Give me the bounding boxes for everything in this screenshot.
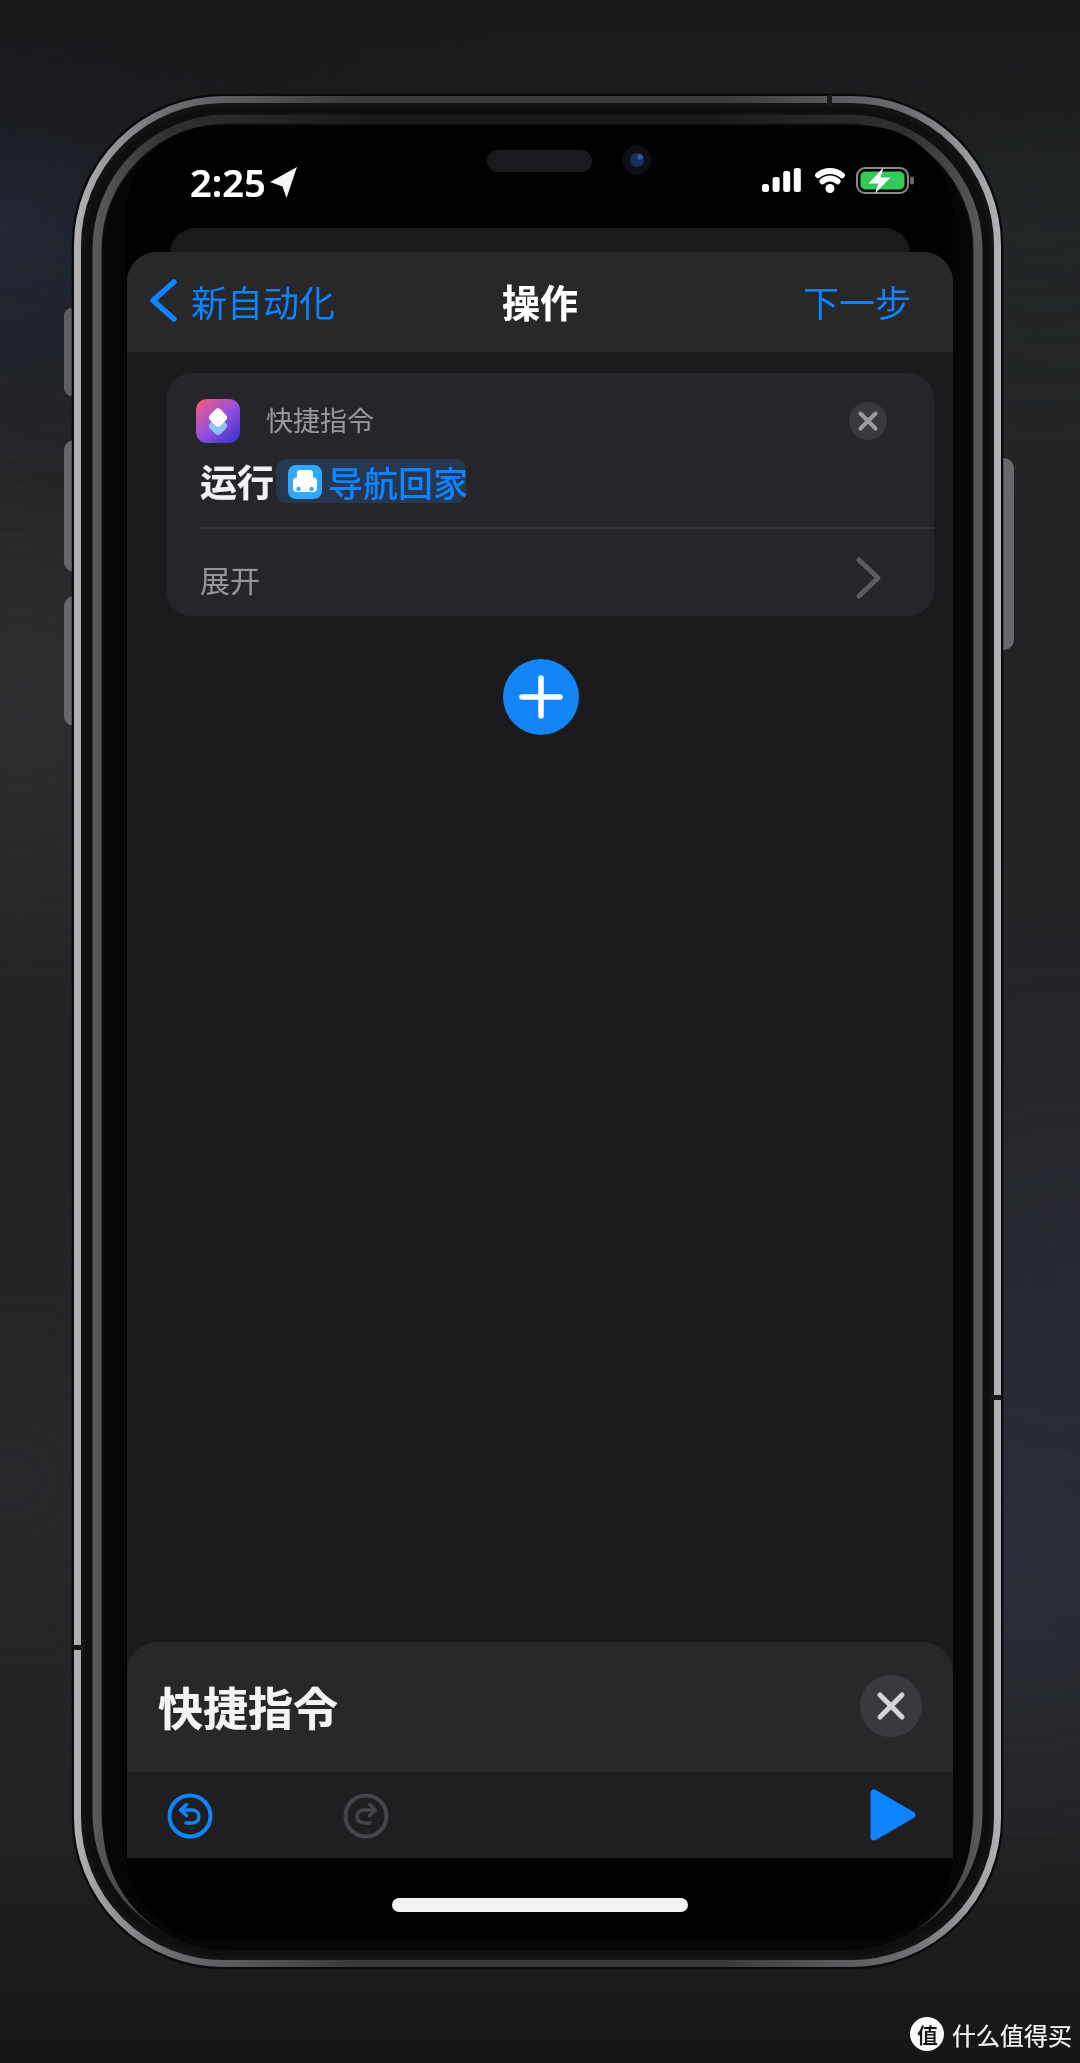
button[interactable] <box>503 659 579 735</box>
button[interactable] <box>844 397 892 445</box>
staticText: 展开 <box>200 557 260 600</box>
staticText: 下一步 <box>803 275 912 327</box>
button[interactable] <box>158 1784 222 1848</box>
button[interactable] <box>166 534 934 616</box>
staticText: 快捷指令 <box>158 1674 339 1739</box>
button[interactable] <box>276 459 466 502</box>
button[interactable] <box>140 266 340 336</box>
button[interactable] <box>334 1784 398 1848</box>
button[interactable] <box>127 1642 952 1772</box>
staticText: 运行 <box>200 454 274 508</box>
button[interactable] <box>850 1782 922 1848</box>
staticText: 2:25 <box>190 156 266 208</box>
staticText: 快捷指令 <box>266 400 374 439</box>
button[interactable] <box>860 1675 922 1737</box>
staticText: 新自动化 <box>191 275 336 327</box>
staticText: 操作 <box>502 273 579 328</box>
staticText: 值 <box>917 2019 938 2049</box>
staticText: 什么值得买 <box>952 2017 1072 2052</box>
button[interactable] <box>790 266 925 336</box>
staticText: 导航回家 <box>328 456 469 507</box>
